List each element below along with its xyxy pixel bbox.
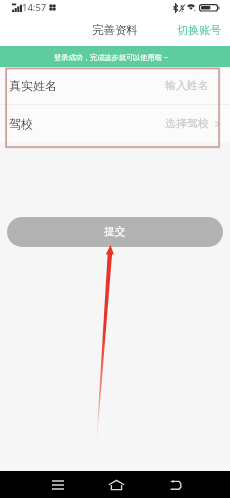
button[interactable]: Recent apps <box>28 471 87 498</box>
staticText: 提交 <box>104 225 126 239</box>
button[interactable]: 切换账号 <box>169 16 230 44</box>
button[interactable]: 真实姓名 <box>0 67 230 104</box>
button[interactable]: 驾校 <box>0 105 230 142</box>
staticText: 输入姓名 <box>165 79 209 93</box>
button[interactable]: Home <box>87 471 146 498</box>
staticText: 驾校 <box>9 116 33 131</box>
button[interactable]: Back <box>146 471 205 498</box>
staticText: 选择驾校 <box>165 117 209 131</box>
staticText: 登录成功，完成这步就可以使用啦 ~ <box>54 52 168 62</box>
staticText: 真实姓名 <box>9 78 57 93</box>
staticText: 14:57 <box>22 1 47 14</box>
staticText: 完善资料 <box>92 23 138 37</box>
staticText: 切换账号 <box>177 23 222 37</box>
button[interactable]: 提交 <box>7 217 223 247</box>
